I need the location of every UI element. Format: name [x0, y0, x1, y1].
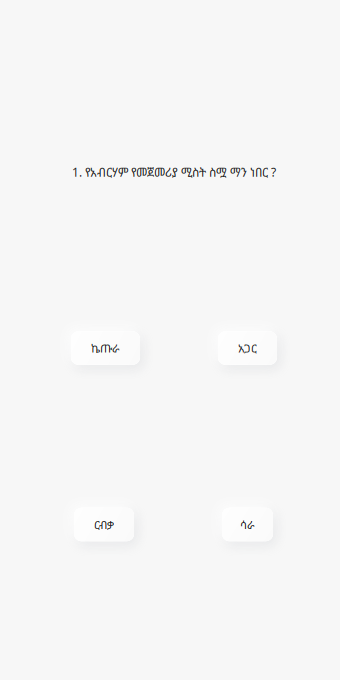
staticText: ሳራ: [240, 517, 255, 532]
button[interactable]: አጋር: [218, 331, 277, 365]
staticText: ርብቃ: [94, 517, 114, 532]
staticText: አጋር: [238, 340, 257, 356]
button[interactable]: ኬጡራ: [71, 331, 140, 365]
staticText: ኬጡራ: [91, 340, 120, 356]
staticText: 1. የአብርሃም የመጀመሪያ ሚስት ስሟ ማን ነበር ?: [72, 164, 276, 180]
button[interactable]: ርብቃ: [74, 508, 134, 541]
button[interactable]: ሳራ: [222, 508, 273, 541]
